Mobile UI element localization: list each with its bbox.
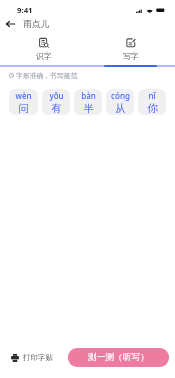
- button[interactable]: yǒu: [42, 89, 70, 115]
- staticText: 9:41: [17, 5, 33, 16]
- button[interactable]: cóng: [106, 89, 134, 115]
- staticText: 从: [115, 102, 126, 115]
- button[interactable]: 打印字贴: [11, 353, 53, 362]
- staticText: 写字: [123, 51, 139, 61]
- button[interactable]: bàn: [74, 89, 102, 115]
- staticText: wèn: [15, 90, 32, 101]
- button[interactable]: 写字: [87, 32, 175, 67]
- button[interactable]: 识字: [0, 32, 87, 67]
- staticText: nǐ: [148, 90, 156, 101]
- staticText: bàn: [81, 90, 96, 101]
- staticText: cóng: [111, 90, 130, 101]
- button[interactable]: wèn: [9, 89, 38, 115]
- staticText: 有: [51, 102, 62, 115]
- staticText: 识字: [36, 51, 52, 61]
- staticText: 雨点儿: [23, 19, 50, 30]
- button[interactable]: nǐ: [138, 89, 166, 115]
- staticText: 你: [147, 102, 158, 115]
- button[interactable]: Back: [0, 17, 21, 31]
- staticText: yǒu: [49, 90, 64, 101]
- staticText: 问: [18, 102, 29, 115]
- staticText: 测一测（听写）: [88, 352, 149, 363]
- button[interactable]: 测一测（听写）: [68, 348, 169, 367]
- staticText: 打印字贴: [23, 353, 53, 362]
- staticText: 字形准确，书写规范: [16, 71, 78, 80]
- staticText: 半: [83, 102, 94, 115]
